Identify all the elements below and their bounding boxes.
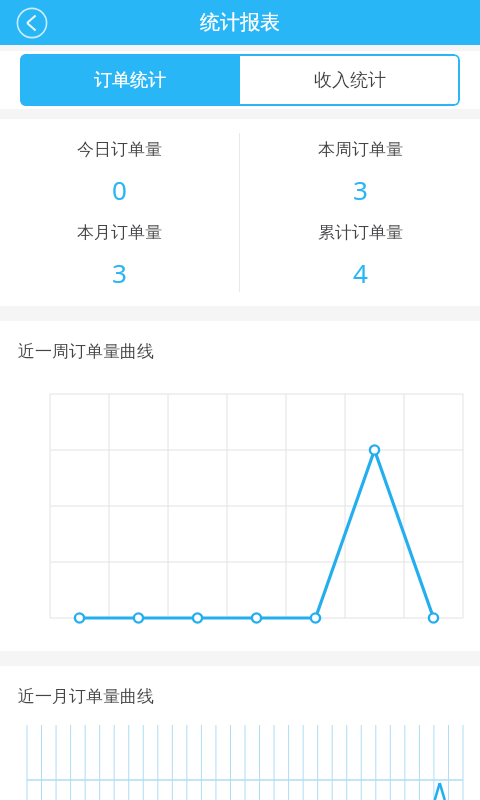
staticText: 本月订单量	[77, 222, 162, 243]
staticText: 4	[353, 255, 368, 290]
staticText: 订单统计	[94, 69, 166, 92]
button[interactable]: 累计订单量	[240, 222, 480, 306]
button[interactable]: 今日订单量	[0, 139, 239, 222]
button[interactable]: 订单统计	[20, 54, 240, 106]
button[interactable]: 本月订单量	[0, 222, 239, 306]
staticText: 收入统计	[314, 69, 386, 92]
staticText: 3	[353, 172, 368, 207]
staticText: 3	[112, 255, 127, 290]
button[interactable]: 本周订单量	[240, 139, 480, 222]
staticText: 今日订单量	[77, 139, 162, 160]
staticText: 本周订单量	[318, 139, 403, 160]
staticText: 近一周订单量曲线	[18, 341, 154, 362]
button[interactable]: 收入统计	[240, 54, 460, 106]
staticText: 统计报表	[200, 10, 280, 35]
staticText: 0	[112, 172, 127, 207]
staticText: 近一月订单量曲线	[18, 686, 154, 707]
button[interactable]: Back	[16, 7, 48, 39]
staticText: 累计订单量	[318, 222, 403, 243]
